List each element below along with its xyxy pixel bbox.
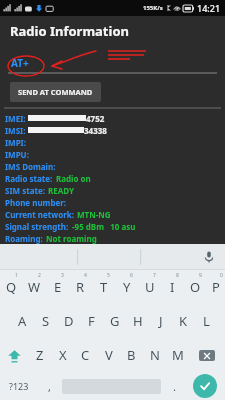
staticText: -95 dBm 10 asu: [72, 221, 136, 232]
staticText: N: [150, 346, 160, 364]
staticText: AT+: [11, 56, 29, 70]
button[interactable]: SEND AT COMMAND: [18, 87, 93, 97]
button[interactable]: Z: [28, 338, 51, 372]
staticText: O: [190, 278, 201, 296]
button[interactable]: R: [69, 270, 92, 304]
staticText: Current network:: [5, 209, 74, 220]
button[interactable]: Enter: [185, 372, 225, 400]
button[interactable]: T: [92, 270, 115, 304]
button[interactable]: ,: [38, 372, 60, 400]
staticText: 155K/s: [143, 4, 163, 12]
button[interactable]: Y: [115, 270, 138, 304]
staticText: E: [54, 278, 62, 296]
staticText: 4: [84, 272, 87, 279]
button[interactable]: C: [74, 338, 97, 372]
button[interactable]: B: [120, 338, 143, 372]
staticText: IMPI:: [5, 137, 26, 148]
button[interactable]: P: [207, 270, 225, 304]
staticText: SIM state:: [5, 185, 45, 196]
button[interactable]: E: [46, 270, 69, 304]
staticText: X: [59, 346, 67, 364]
button[interactable]: D: [57, 304, 80, 338]
button[interactable]: Backspace: [189, 338, 225, 372]
button[interactable]: .: [163, 372, 185, 400]
staticText: I: [170, 278, 175, 296]
staticText: ,: [48, 379, 51, 394]
staticText: T: [100, 278, 108, 296]
button[interactable]: V: [97, 338, 120, 372]
staticText: Radio state:: [5, 173, 53, 184]
staticText: J: [159, 312, 163, 330]
staticText: 3: [61, 272, 64, 279]
button[interactable]: M: [166, 338, 189, 372]
staticText: MTN-NG: [77, 209, 111, 220]
staticText: ?123: [9, 380, 29, 392]
staticText: 14:21: [197, 2, 221, 14]
button[interactable]: A: [11, 304, 34, 338]
staticText: V: [105, 346, 113, 364]
button[interactable]: W: [23, 270, 46, 304]
button[interactable]: O: [184, 270, 207, 304]
button[interactable]: L: [195, 304, 218, 338]
staticText: B: [127, 346, 136, 364]
staticText: Not roaming: [46, 233, 97, 244]
staticText: D: [64, 312, 74, 330]
staticText: 7: [153, 272, 156, 279]
staticText: Z: [36, 346, 44, 364]
staticText: Radio on: [56, 173, 91, 184]
button[interactable]: F: [80, 304, 103, 338]
staticText: W: [28, 278, 41, 296]
staticText: READY: [48, 185, 75, 196]
staticText: H: [133, 312, 143, 330]
staticText: .: [173, 379, 176, 394]
staticText: IMPU:: [5, 149, 29, 160]
button[interactable]: K: [172, 304, 195, 338]
button[interactable]: H: [126, 304, 149, 338]
button[interactable]: Shift: [0, 338, 28, 372]
staticText: L: [203, 312, 210, 330]
button[interactable]: Voice input: [201, 249, 217, 265]
staticText: 4752: [86, 113, 105, 124]
staticText: F: [88, 312, 95, 330]
staticText: M: [172, 346, 184, 364]
staticText: IMEI:: [5, 113, 26, 124]
button[interactable]: [60, 372, 163, 400]
staticText: Y: [123, 278, 131, 296]
staticText: C: [81, 346, 90, 364]
button[interactable]: U: [138, 270, 161, 304]
staticText: SEND AT COMMAND: [18, 87, 93, 97]
staticText: Signal strength:: [5, 221, 69, 232]
staticText: 34338: [84, 125, 107, 136]
staticText: 2: [38, 272, 41, 279]
staticText: 5: [107, 272, 110, 279]
staticText: IMS Domain:: [5, 161, 56, 172]
button[interactable]: I: [161, 270, 184, 304]
staticText: Radio Information: [10, 22, 129, 40]
staticText: 1: [15, 272, 18, 279]
staticText: U: [145, 278, 155, 296]
button[interactable]: G: [103, 304, 126, 338]
button[interactable]: N: [143, 338, 166, 372]
staticText: A: [18, 312, 27, 330]
staticText: 9: [199, 272, 202, 279]
staticText: IMSI:: [5, 125, 26, 136]
staticText: P: [212, 278, 220, 296]
button[interactable]: J: [149, 304, 172, 338]
staticText: S: [42, 312, 50, 330]
button[interactable]: S: [34, 304, 57, 338]
staticText: Phone number:: [5, 197, 67, 208]
button[interactable]: ?123: [0, 372, 38, 400]
staticText: 6: [130, 272, 133, 279]
staticText: G: [110, 312, 120, 330]
staticText: K: [179, 312, 188, 330]
staticText: Roaming:: [5, 233, 43, 244]
button[interactable]: AT+: [8, 52, 217, 74]
button[interactable]: Q: [0, 270, 23, 304]
staticText: Q: [6, 278, 17, 296]
staticText: 8: [176, 272, 179, 279]
button[interactable]: X: [51, 338, 74, 372]
staticText: 0: [220, 272, 223, 279]
staticText: R: [76, 278, 85, 296]
